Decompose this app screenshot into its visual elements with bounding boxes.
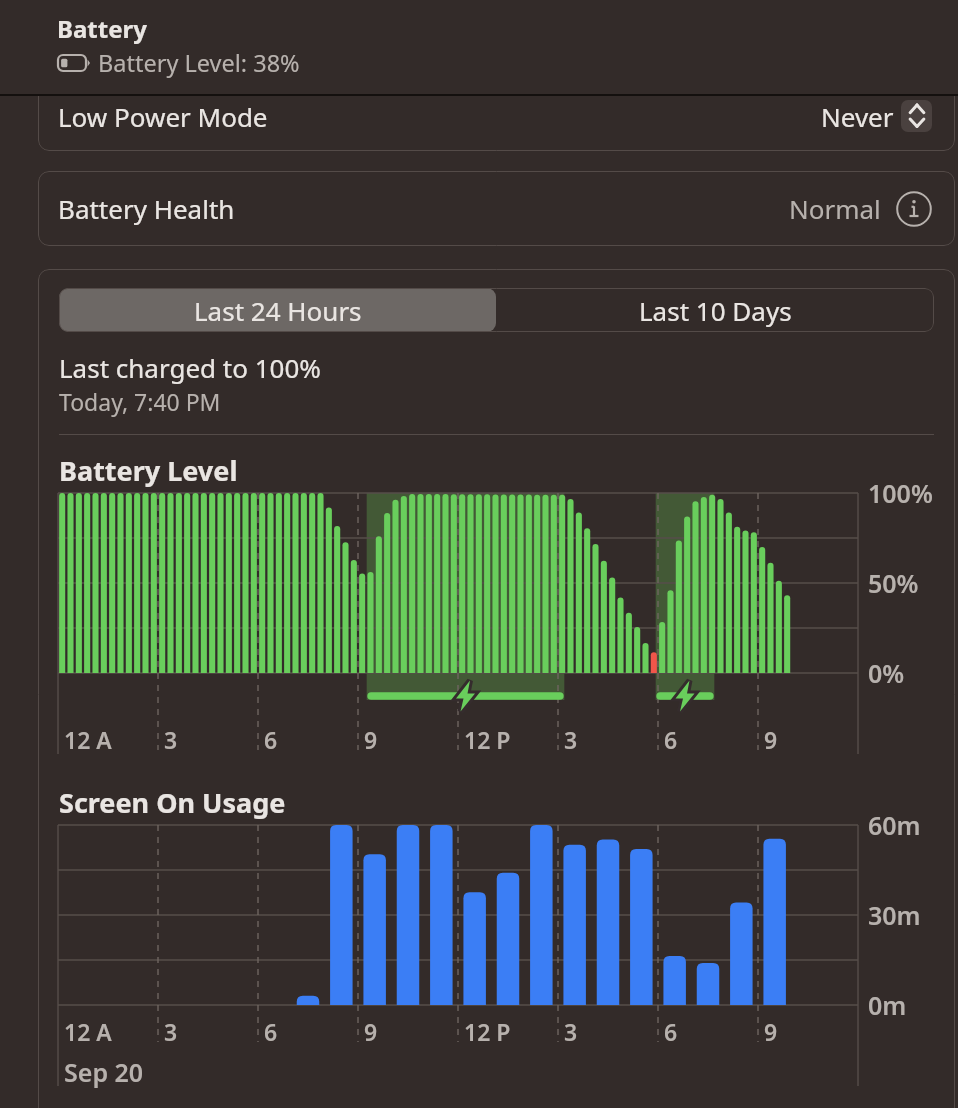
staticText: 9: [764, 724, 778, 755]
staticText: Today, 7:40 PM: [59, 386, 221, 417]
staticText: 6: [664, 1016, 678, 1047]
staticText: 9: [364, 1016, 378, 1047]
button[interactable]: Last 10 Days: [496, 288, 934, 332]
staticText: 12 P: [464, 724, 511, 755]
staticText: 6: [664, 724, 678, 755]
staticText: Battery Level: [59, 452, 238, 489]
button[interactable]: Battery Health: [38, 171, 955, 246]
button[interactable]: Last 24 Hours: [59, 288, 496, 332]
button[interactable]: Low Power Mode: [38, 81, 955, 151]
button[interactable]: Battery health info: [896, 191, 932, 227]
staticText: 3: [564, 1016, 578, 1047]
staticText: Low Power Mode: [58, 99, 268, 134]
staticText: Normal: [789, 191, 881, 226]
staticText: 0m: [868, 988, 907, 1022]
button[interactable]: Choose low power mode: [901, 100, 932, 132]
staticText: Sep 20: [64, 1055, 144, 1089]
staticText: 3: [564, 724, 578, 755]
staticText: 60m: [868, 808, 921, 842]
staticText: 6: [264, 724, 278, 755]
staticText: 12 P: [464, 1016, 511, 1047]
staticText: 0%: [868, 656, 905, 690]
staticText: 9: [764, 1016, 778, 1047]
staticText: 3: [164, 724, 178, 755]
staticText: Screen On Usage: [59, 784, 286, 821]
staticText: Battery: [57, 12, 147, 45]
staticText: 6: [264, 1016, 278, 1047]
staticText: Last charged to 100%: [59, 350, 321, 385]
staticText: 50%: [868, 566, 919, 600]
staticText: 12 A: [64, 1016, 112, 1047]
staticText: 12 A: [64, 724, 112, 755]
staticText: 100%: [868, 476, 933, 510]
staticText: Last 24 Hours: [194, 293, 362, 328]
staticText: Battery Health: [58, 191, 235, 226]
staticText: Last 10 Days: [639, 293, 792, 328]
staticText: 30m: [868, 898, 921, 932]
staticText: 3: [164, 1016, 178, 1047]
staticText: 9: [364, 724, 378, 755]
staticText: Battery Level: 38%: [98, 47, 300, 79]
staticText: Never: [821, 99, 894, 134]
